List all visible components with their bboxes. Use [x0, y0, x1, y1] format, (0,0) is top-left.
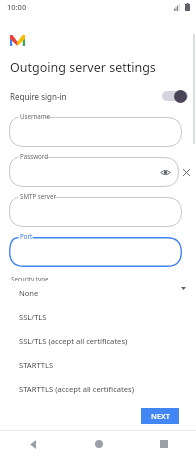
staticText: STARTTLS (accept all certificates) — [19, 384, 134, 394]
button[interactable]: None — [8, 281, 168, 305]
staticText: Password — [20, 152, 48, 160]
button[interactable]: NEXT — [141, 408, 179, 424]
button[interactable]: Open security type menu — [178, 283, 188, 293]
staticText: NEXT — [151, 411, 170, 421]
button[interactable]: Recent apps — [131, 431, 196, 457]
button[interactable] — [9, 117, 182, 147]
button[interactable] — [9, 197, 182, 227]
staticText: Outgoing server settings — [10, 59, 156, 76]
button[interactable]: STARTTLS (accept all certificates) — [8, 377, 168, 401]
button[interactable] — [162, 89, 188, 103]
staticText: SMTP server — [20, 192, 56, 200]
button[interactable]: Back — [0, 431, 66, 457]
staticText: STARTTLS — [19, 360, 54, 370]
staticText: Security type — [11, 275, 49, 283]
button[interactable]: STARTTLS — [8, 353, 168, 377]
button[interactable]: Clear — [179, 165, 193, 179]
staticText: None — [19, 288, 39, 298]
button[interactable]: Require sign-in — [0, 87, 196, 105]
staticText: Require sign-in — [10, 91, 67, 102]
button[interactable]: Show password — [9, 157, 179, 187]
staticText: SSL/TLS (accept all certificates) — [19, 336, 128, 346]
button[interactable]: Home — [66, 431, 131, 457]
staticText: Username — [20, 112, 51, 120]
button[interactable]: SSL/TLS (accept all certificates) — [8, 329, 168, 353]
button[interactable]: Show password — [159, 166, 172, 179]
staticText: SSL/TLS — [19, 312, 47, 322]
button[interactable] — [9, 237, 182, 267]
staticText: Port — [20, 232, 33, 240]
button[interactable]: SSL/TLS — [8, 305, 168, 329]
staticText: 10:00 — [7, 2, 27, 12]
